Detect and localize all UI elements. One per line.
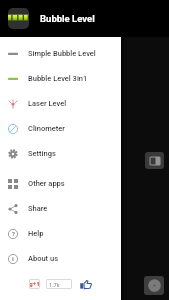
staticText: i xyxy=(12,255,14,263)
button[interactable]: i xyxy=(0,246,121,271)
staticText: Share xyxy=(28,204,48,213)
button[interactable]: Google plus one xyxy=(29,279,40,289)
button[interactable]: Bubble Level 3in1 xyxy=(0,66,121,91)
button[interactable]: ? xyxy=(0,221,121,246)
button[interactable]: Simple Bubble Level xyxy=(0,41,121,66)
staticText: Clinometer xyxy=(28,124,65,133)
staticText: Settings xyxy=(28,149,56,158)
staticText: ? xyxy=(12,230,15,238)
staticText: Laser Level xyxy=(28,99,67,108)
staticText: Bubble Level 3in1 xyxy=(28,74,88,83)
button[interactable]: Other apps xyxy=(0,171,121,196)
button[interactable]: Settings xyxy=(0,141,121,166)
button[interactable]: Share xyxy=(0,196,121,221)
button[interactable]: Display mode xyxy=(145,152,164,169)
staticText: Bubble Level xyxy=(40,13,95,24)
button[interactable]: Like on Facebook xyxy=(79,278,92,290)
button[interactable]: Clinometer xyxy=(0,116,121,141)
staticText: Simple Bubble Level xyxy=(28,49,96,58)
staticText: Help xyxy=(28,229,44,238)
button[interactable]: Calibrate xyxy=(144,276,164,295)
staticText: Other apps xyxy=(28,179,65,188)
staticText: g+1 xyxy=(29,280,40,288)
staticText: About us xyxy=(28,254,59,263)
button[interactable]: Laser Level xyxy=(0,91,121,116)
staticText: 1.7k xyxy=(49,281,60,288)
